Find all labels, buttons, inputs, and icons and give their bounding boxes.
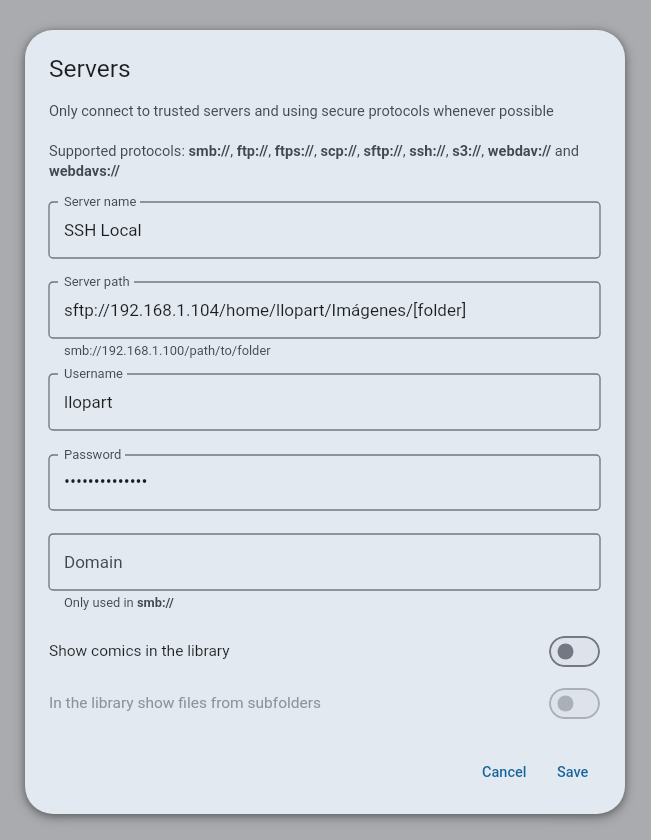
staticText: In the library show files from subfolder… [49,694,549,712]
staticText: Only connect to trusted servers and usin… [49,102,600,119]
button[interactable]: Cancel [470,754,539,791]
staticText: Show comics in the library [49,642,549,660]
staticText: Only used in smb:// [64,595,174,610]
button[interactable]: Password [49,455,600,510]
button[interactable]: Server name [49,202,600,258]
button[interactable]: Server path [49,282,600,338]
staticText: Cancel [482,764,527,781]
staticText: •••••••••••••• [64,472,148,493]
staticText: Server path [64,274,130,289]
staticText: Save [557,764,589,781]
button[interactable]: Save [545,754,601,791]
staticText: Password [64,447,122,462]
staticText: Server name [64,194,137,209]
staticText: Servers [49,54,131,83]
button[interactable]: In the library show files from subfolder… [549,688,600,719]
button[interactable]: In the library show files from subfolder… [49,683,600,723]
staticText: SSH Local [64,220,142,240]
staticText: Username [64,366,123,381]
staticText: llopart [64,392,113,412]
button[interactable]: Show comics in the library [549,636,600,667]
staticText: sftp://192.168.1.104/home/llopart/Imágen… [64,300,467,320]
button[interactable]: Domain [49,534,600,590]
staticText: Supported protocols: smb://, ftp://, ftp… [49,142,600,179]
button[interactable]: Username [49,374,600,430]
button[interactable]: Show comics in the library [49,631,600,671]
staticText: smb://192.168.1.100/path/to/folder [64,343,271,358]
staticText: Domain [64,552,123,572]
